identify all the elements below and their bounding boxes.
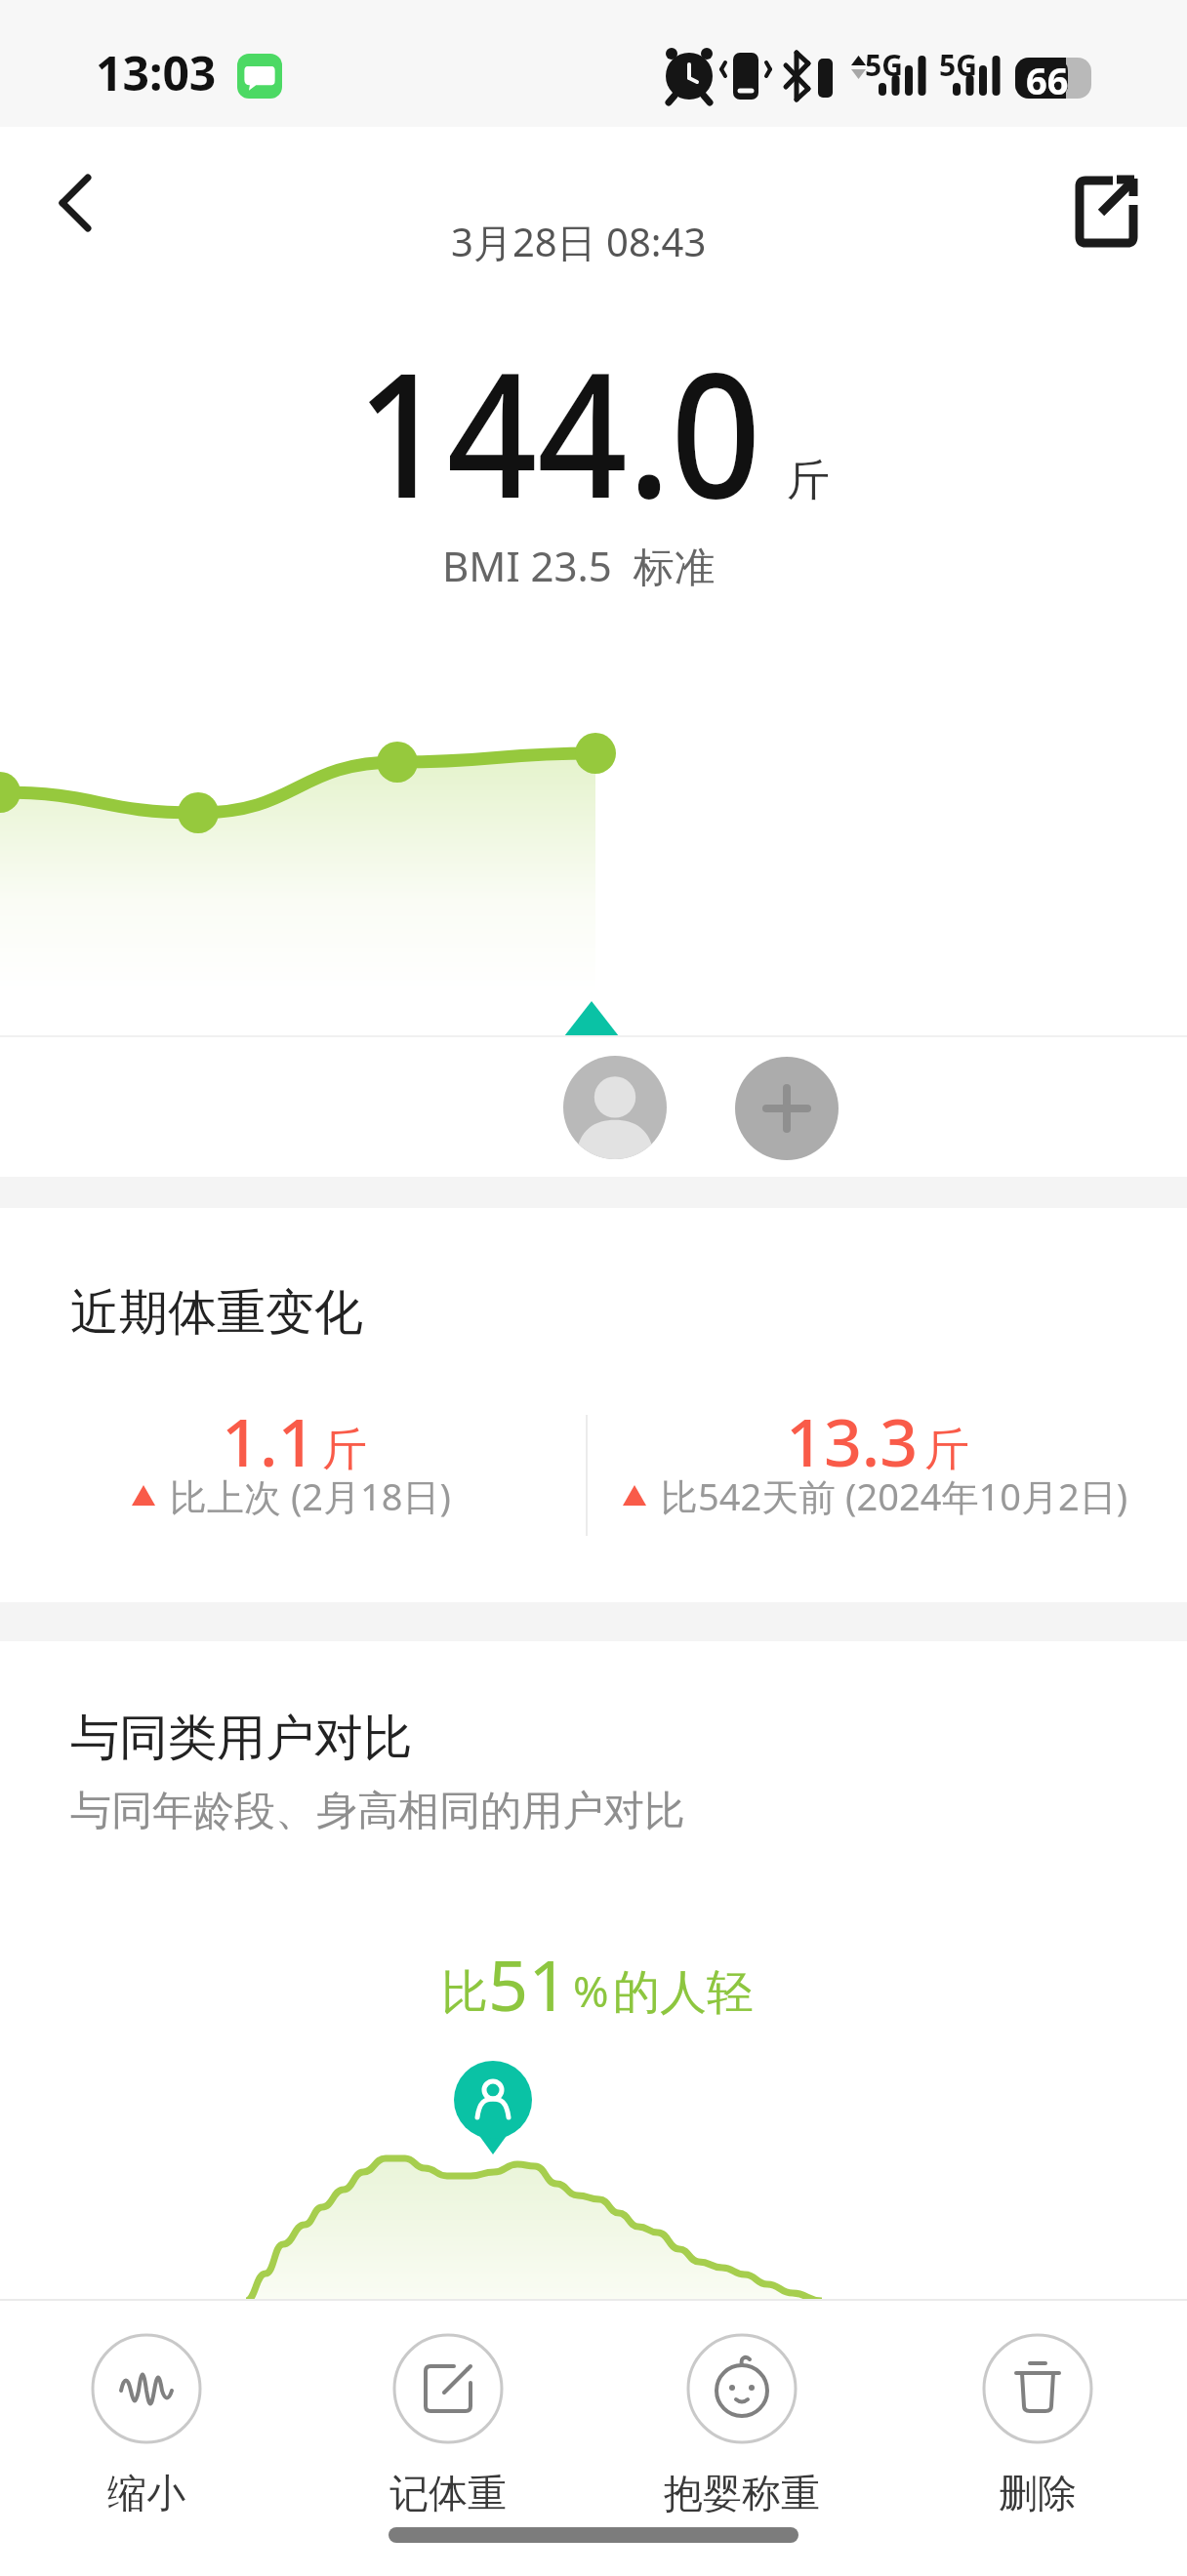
staticText: 5G — [865, 45, 903, 85]
staticText: 斤 — [322, 1422, 367, 1478]
staticText: 近期体重变化 — [70, 1282, 363, 1344]
staticText: 比上次 (2月18日) — [170, 1470, 451, 1521]
button[interactable] — [1054, 166, 1148, 260]
button[interactable] — [735, 1057, 839, 1160]
staticText: 5G — [939, 45, 977, 85]
button[interactable] — [563, 1056, 667, 1159]
staticText: 比542天前 (2024年10月2日) — [661, 1470, 1128, 1521]
staticText: 1.1 — [222, 1395, 316, 1486]
staticText: 13:03 — [96, 41, 217, 104]
staticText: 144.0 — [356, 314, 761, 548]
staticText: 删除 — [999, 2469, 1077, 2517]
staticText: 66 — [1026, 55, 1069, 105]
staticText: 51 — [488, 1936, 569, 2032]
staticText: 斤 — [924, 1422, 969, 1478]
staticText: 斤 — [787, 454, 830, 507]
button[interactable] — [29, 156, 123, 250]
button[interactable]: 抱婴称重 — [664, 2334, 820, 2517]
staticText: 3月28日 08:43 — [451, 215, 707, 268]
staticText: 抱婴称重 — [664, 2469, 820, 2517]
staticText: 的人轻 — [613, 1963, 754, 2022]
staticText: 记体重 — [389, 2469, 507, 2517]
staticText: 与同类用户对比 — [70, 1708, 412, 1769]
button[interactable]: 缩小 — [92, 2334, 201, 2517]
button[interactable]: 记体重 — [389, 2334, 507, 2517]
staticText: 13.3 — [786, 1395, 919, 1486]
button[interactable]: 删除 — [983, 2334, 1092, 2517]
staticText: 比 — [441, 1963, 488, 2022]
staticText: BMI 23.5 标准 — [442, 538, 716, 593]
staticText: 与同年龄段、身高相同的用户对比 — [70, 1786, 685, 1837]
staticText: % — [573, 1961, 609, 2020]
staticText: 缩小 — [107, 2469, 185, 2517]
